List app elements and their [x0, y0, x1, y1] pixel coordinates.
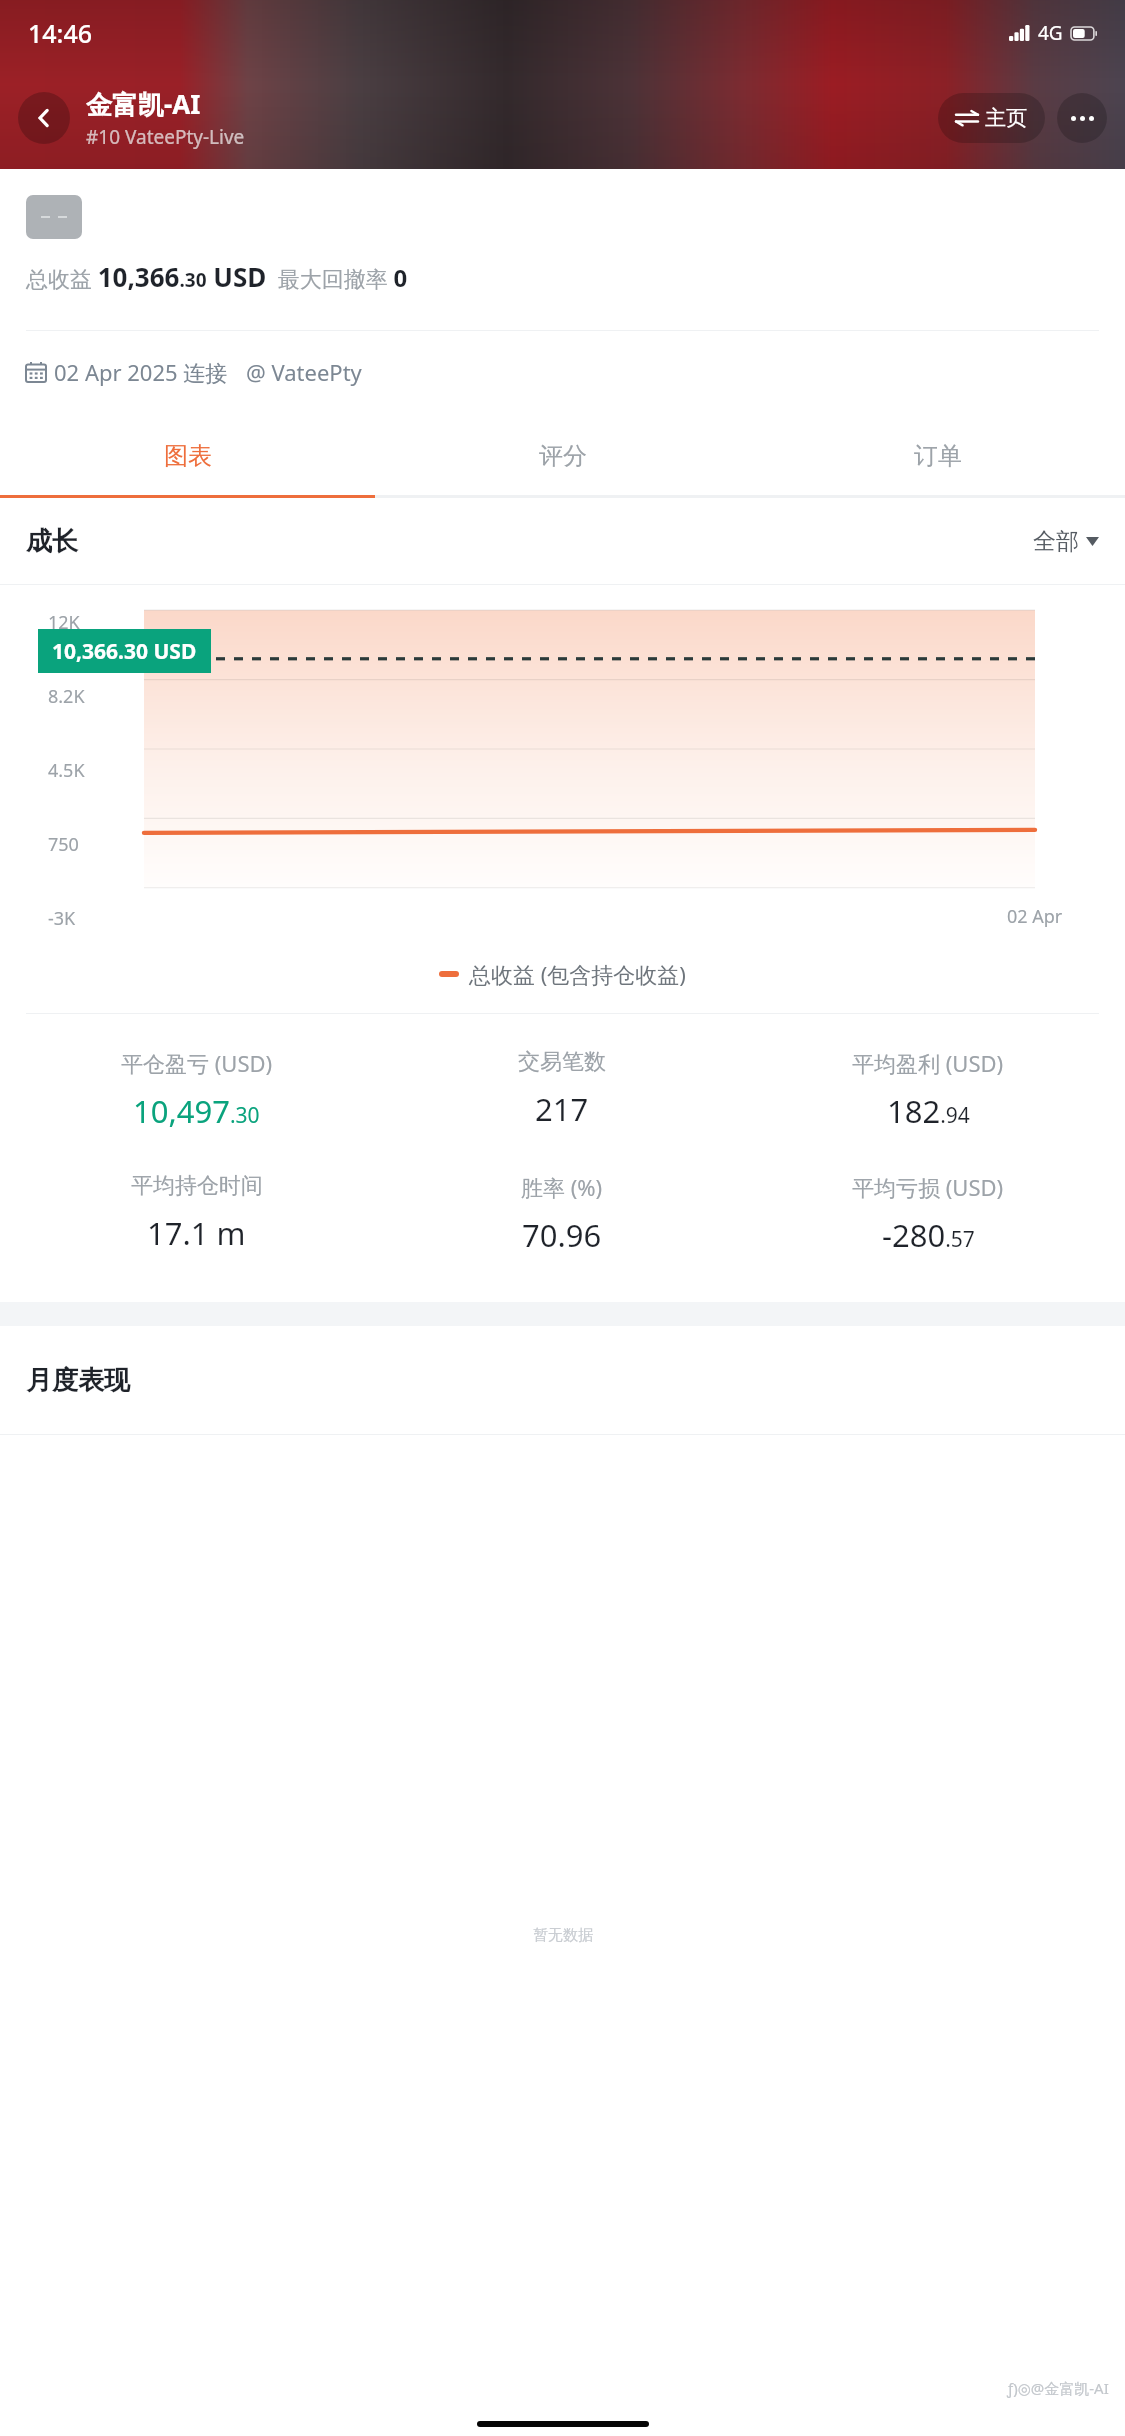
staticText: 平均亏损 (USD): [852, 1172, 1004, 1202]
staticText: 暂无数据: [533, 1926, 593, 1945]
staticText: 02 Apr 2025 连接: [54, 357, 228, 387]
staticText: 70.96: [522, 1214, 602, 1256]
staticText: 12K: [48, 610, 80, 635]
staticText: -280.57: [882, 1214, 975, 1256]
staticText: 182.94: [887, 1090, 970, 1132]
staticText: 订单: [914, 441, 962, 471]
staticText: @ VateePty: [246, 357, 362, 387]
staticText: 17.1 m: [147, 1212, 246, 1254]
staticText: 月度表现: [26, 1364, 130, 1397]
staticText: 总收益 10,366.30 USD 最大回撤率 0: [26, 259, 408, 294]
staticText: 750: [48, 832, 79, 857]
staticText: 主页: [985, 105, 1027, 131]
button[interactable]: 评分: [375, 417, 750, 495]
staticText: 图表: [164, 441, 212, 471]
button[interactable]: 主页: [956, 93, 1027, 143]
staticText: 02 Apr: [1007, 904, 1063, 929]
staticText: 金富凯-AI: [86, 86, 201, 122]
staticText: ƒ)◎@金富凯-AI: [1007, 2378, 1109, 2398]
staticText: 交易笔数: [518, 1048, 606, 1076]
staticText: #10 VateePty-Live: [86, 124, 245, 150]
staticText: 全部: [1033, 527, 1079, 556]
staticText: 217: [535, 1088, 589, 1130]
staticText: 总收益 (包含持仓收益): [469, 959, 686, 989]
staticText: -3K: [48, 906, 76, 931]
staticText: 4G: [1038, 20, 1063, 46]
staticText: 10,497.30: [133, 1090, 260, 1132]
staticText: 平均盈利 (USD): [852, 1048, 1004, 1078]
staticText: 成长: [26, 525, 78, 558]
staticText: 胜率 (%): [521, 1172, 603, 1202]
staticText: 8.2K: [48, 684, 85, 709]
staticText: 4.5K: [48, 758, 85, 783]
staticText: 14:46: [28, 16, 93, 50]
button[interactable]: 全部: [1033, 527, 1099, 556]
staticText: 10,366.30 USD: [52, 637, 197, 666]
staticText: 平仓盈亏 (USD): [121, 1048, 273, 1078]
button[interactable]: 订单: [750, 417, 1125, 495]
staticText: 评分: [539, 441, 587, 471]
button[interactable]: More options: [1057, 93, 1107, 143]
button[interactable]: 图表: [0, 417, 375, 495]
button[interactable]: Back: [18, 92, 70, 144]
staticText: 平均持仓时间: [131, 1172, 263, 1200]
